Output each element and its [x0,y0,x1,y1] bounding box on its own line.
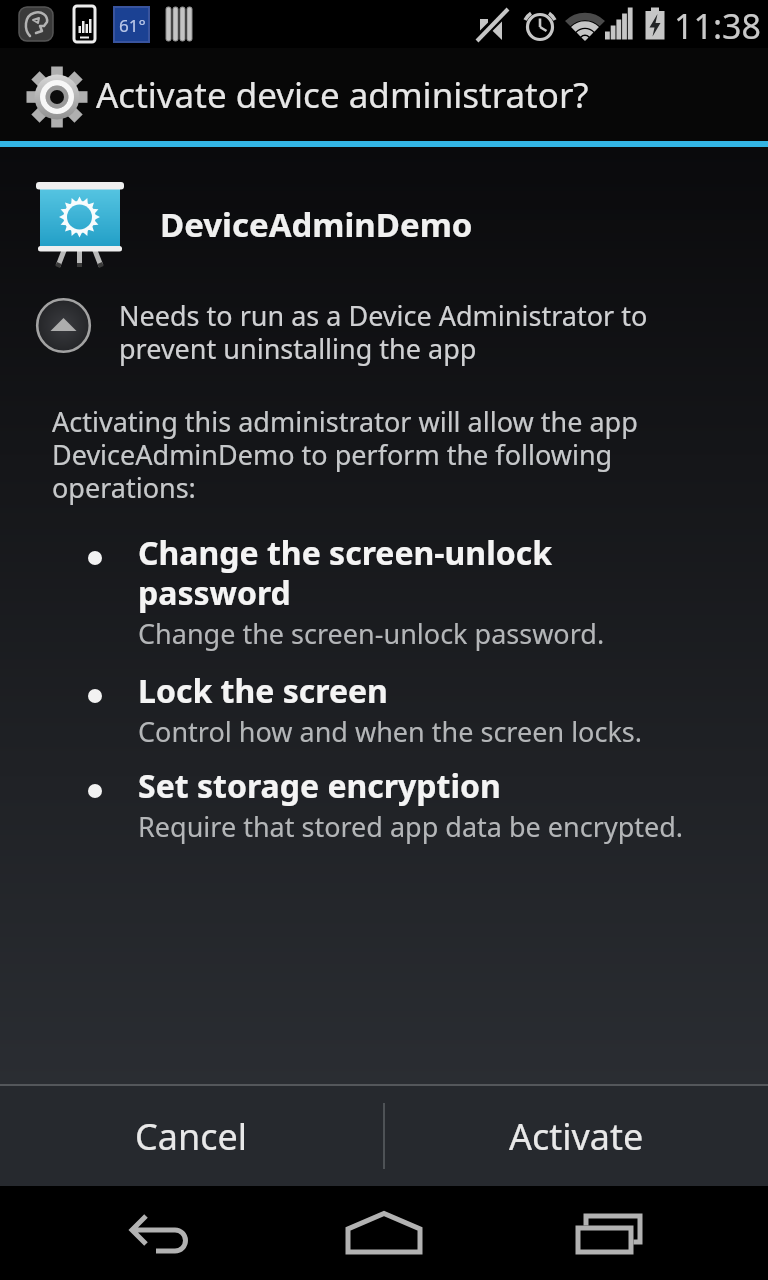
staticText: Change the screen-unlock password [138,531,553,615]
button[interactable] [0,1186,256,1280]
button[interactable] [35,297,92,354]
staticText: Needs to run as a Device Administrator t… [119,297,648,367]
staticText: 61° [119,14,146,37]
button[interactable] [512,1186,768,1280]
button[interactable]: Activate [385,1086,768,1186]
staticText: Set storage encryption [138,764,501,808]
staticText: Activate [509,1112,644,1161]
staticText: Cancel [135,1112,248,1161]
button[interactable] [256,1186,512,1280]
staticText: Require that stored app data be encrypte… [138,808,684,845]
button[interactable]: Cancel [0,1086,383,1186]
staticText: Change the screen-unlock password. [138,615,605,652]
staticText: Activating this administrator will allow… [52,403,638,506]
staticText: Lock the screen [138,669,388,713]
staticText: DeviceAdminDemo [160,202,473,247]
staticText: Activate device administrator? [96,71,589,119]
staticText: 11:38 [674,3,761,49]
staticText: Control how and when the screen locks. [138,713,642,750]
